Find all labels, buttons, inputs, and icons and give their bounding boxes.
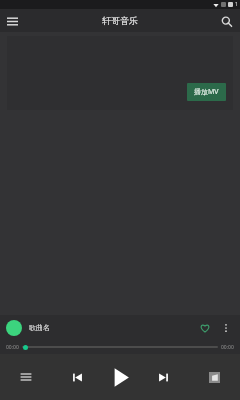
button[interactable]: Menu bbox=[3, 12, 21, 30]
button[interactable]: 歌曲名 bbox=[0, 315, 240, 340]
button[interactable]: Favorite bbox=[197, 320, 213, 336]
staticText: 1 bbox=[235, 1, 238, 8]
button[interactable]: 播放MV bbox=[187, 83, 226, 101]
button[interactable]: Previous bbox=[63, 363, 91, 391]
button[interactable]: 播放MV bbox=[7, 36, 233, 110]
staticText: 轩哥音乐 bbox=[102, 15, 138, 26]
button[interactable]: Next bbox=[149, 363, 177, 391]
staticText: 00:00 bbox=[221, 344, 234, 351]
button[interactable]: Play bbox=[103, 360, 137, 394]
button[interactable]: Playlist bbox=[0, 354, 52, 400]
staticText: 歌曲名 bbox=[29, 323, 50, 332]
button[interactable]: More options bbox=[218, 320, 234, 336]
button[interactable]: Search bbox=[217, 12, 235, 30]
button[interactable]: Lyrics bbox=[188, 354, 240, 400]
button[interactable] bbox=[22, 342, 218, 352]
staticText: 播放MV bbox=[194, 87, 219, 97]
staticText: 00:00 bbox=[6, 344, 19, 351]
